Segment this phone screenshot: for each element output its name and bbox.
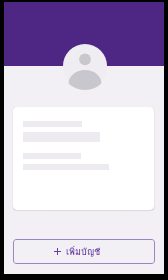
- other: Add: [54, 248, 61, 255]
- staticText: เพิ่มบัญชี: [66, 245, 101, 259]
- button[interactable]: Add: [13, 239, 155, 264]
